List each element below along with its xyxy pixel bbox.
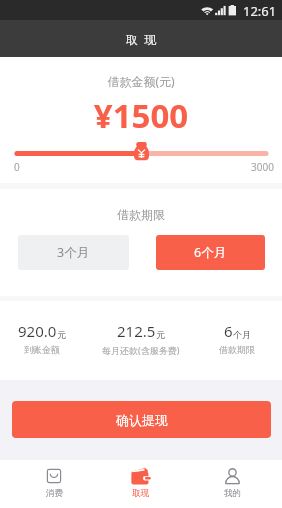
staticText: 取现 bbox=[132, 488, 149, 499]
staticText: 取 现 bbox=[126, 31, 157, 47]
staticText: 0 bbox=[14, 160, 20, 174]
button[interactable]: 我的 bbox=[188, 460, 277, 508]
staticText: 借款期限 bbox=[0, 207, 282, 222]
button[interactable]: 6个月 bbox=[156, 235, 265, 270]
button[interactable]: 取现 bbox=[96, 460, 185, 508]
staticText: 个月 bbox=[233, 329, 251, 340]
button[interactable]: 3个月 bbox=[18, 235, 129, 270]
staticText: 3个月 bbox=[57, 244, 90, 261]
staticText: 每月还款(含服务费) bbox=[102, 344, 180, 356]
staticText: 920.0 bbox=[18, 321, 57, 341]
staticText: 6个月 bbox=[194, 244, 227, 261]
staticText: 确认提现 bbox=[116, 412, 168, 428]
button[interactable]: 确认提现 bbox=[12, 401, 271, 438]
staticText: 12:61 bbox=[243, 2, 277, 20]
staticText: 借款金额(元) bbox=[0, 73, 282, 89]
staticText: 消费 bbox=[46, 488, 63, 499]
staticText: 元 bbox=[156, 329, 165, 340]
staticText: 到账金额 bbox=[24, 344, 60, 355]
staticText: 元 bbox=[57, 329, 66, 340]
staticText: 212.5 bbox=[117, 321, 156, 341]
staticText: ¥1500 bbox=[0, 93, 282, 138]
staticText: 6 bbox=[224, 321, 233, 341]
button[interactable]: 消费 bbox=[9, 460, 99, 508]
staticText: 借款期限 bbox=[219, 344, 255, 355]
staticText: 我的 bbox=[224, 488, 241, 499]
staticText: 3000 bbox=[251, 160, 274, 174]
